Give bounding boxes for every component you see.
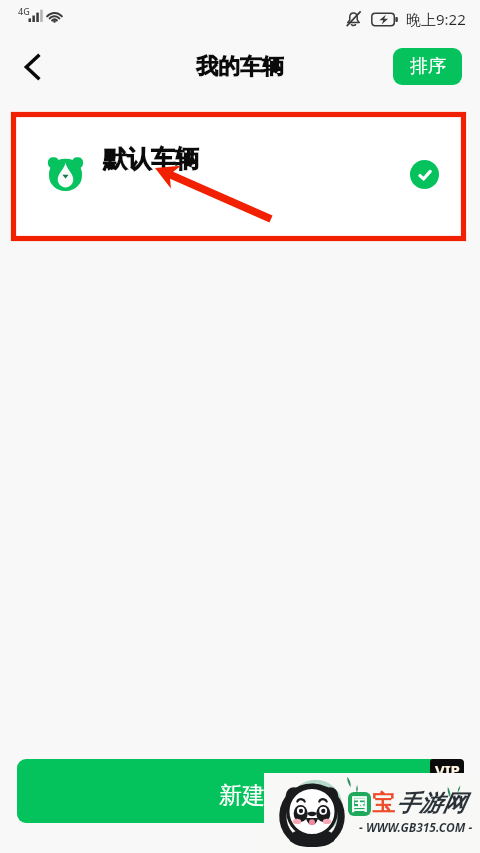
button[interactable]: 排序: [393, 48, 462, 85]
button[interactable]: Back: [10, 44, 56, 90]
staticText: 新建车辆: [219, 781, 311, 810]
button[interactable]: 新建车辆: [17, 759, 463, 823]
staticText: 我的车辆: [196, 53, 284, 81]
staticText: - WWW.GB315.COM -: [359, 819, 473, 835]
button[interactable]: 默认车辆: [12, 112, 468, 237]
staticText: 排序: [410, 55, 446, 78]
staticText: 国: [351, 794, 368, 815]
staticText: VIP: [435, 760, 460, 774]
staticText: 宝: [372, 789, 395, 818]
staticText: 手游网: [396, 789, 465, 818]
staticText: 4G: [18, 5, 30, 17]
staticText: 默认车辆: [103, 144, 199, 174]
staticText: 晚上9:22: [406, 9, 466, 29]
